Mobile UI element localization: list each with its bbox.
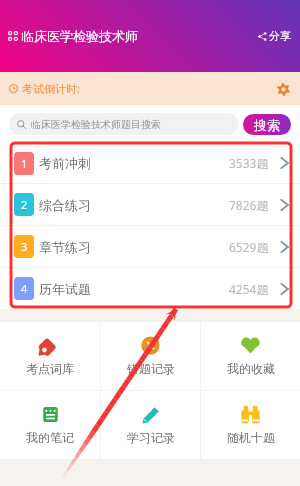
staticText: 7826题 (229, 197, 269, 213)
staticText: 考试倒计时: (22, 81, 80, 96)
staticText: 随机十题 (227, 430, 275, 445)
staticText: 分享 (269, 29, 291, 43)
staticText: 章节练习 (39, 239, 91, 255)
button[interactable]: 我的收藏 (201, 322, 300, 390)
staticText: 3 (21, 239, 28, 254)
staticText: 搜索 (254, 117, 280, 133)
button[interactable]: 2 (0, 184, 300, 225)
button[interactable]: 4 (0, 268, 300, 309)
button[interactable]: 临床医学检验技术师题目搜索 (9, 113, 238, 135)
staticText: 临床医学检验技术师 (21, 28, 138, 44)
button[interactable]: Settings (275, 81, 291, 97)
button[interactable]: 我的笔记 (0, 391, 100, 459)
button[interactable]: 考点词库 (0, 322, 100, 390)
button[interactable]: 分享 (256, 25, 293, 47)
button[interactable]: 错题记录 (101, 322, 200, 390)
staticText: 学习记录 (127, 430, 175, 445)
staticText: 错题记录 (127, 361, 175, 376)
staticText: 4254题 (229, 281, 269, 297)
staticText: 我的收藏 (227, 361, 275, 376)
button[interactable]: 3 (0, 226, 300, 267)
button[interactable]: 学习记录 (101, 391, 200, 459)
staticText: 1 (21, 156, 28, 171)
staticText: 4 (21, 281, 28, 296)
button[interactable]: 随机十题 (201, 391, 300, 459)
staticText: 6529题 (229, 239, 269, 255)
staticText: 综合练习 (39, 197, 91, 213)
button[interactable]: 1 (0, 143, 300, 183)
staticText: 我的笔记 (26, 430, 74, 445)
staticText: 临床医学检验技术师题目搜索 (31, 118, 161, 131)
button[interactable]: 搜索 (243, 114, 291, 135)
staticText: 2 (21, 197, 28, 212)
staticText: 3533题 (229, 155, 269, 171)
staticText: 考点词库 (26, 361, 74, 376)
staticText: 考前冲刺 (39, 155, 91, 171)
staticText: 历年试题 (39, 281, 91, 297)
